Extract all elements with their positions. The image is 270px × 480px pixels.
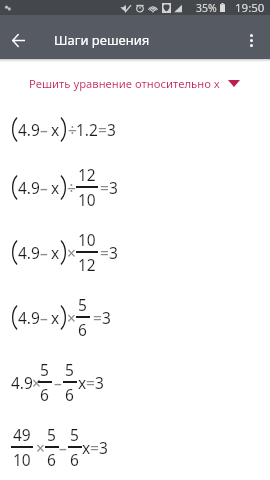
button[interactable]: 4.9 (0, 219, 270, 284)
staticText: 3 (107, 119, 116, 140)
staticText: – (40, 307, 48, 328)
staticText: = (100, 242, 109, 263)
staticText: 4.9 (18, 177, 40, 198)
staticText: – (40, 177, 48, 198)
staticText: 6 (40, 384, 49, 405)
staticText: x (51, 177, 60, 198)
staticText: × (32, 372, 41, 393)
button[interactable]: 4.9 (0, 349, 270, 414)
button[interactable]: 49 (0, 414, 270, 479)
staticText: Шаги решения (54, 31, 150, 49)
staticText: ÷ (67, 177, 76, 198)
staticText: = (100, 177, 109, 198)
staticText: x (82, 437, 91, 458)
staticText: – (40, 119, 48, 140)
staticText: 5 (70, 424, 79, 445)
button[interactable]: 4.9 (0, 105, 270, 154)
button[interactable]: Решить уравнение относительно x (0, 62, 270, 105)
button[interactable]: More options (232, 21, 270, 59)
staticText: 5 (40, 359, 49, 380)
staticText: 6 (65, 384, 74, 405)
staticText: x (51, 242, 60, 263)
staticText: 3 (99, 437, 108, 458)
staticText: 6 (47, 449, 56, 470)
button[interactable]: Back (0, 22, 36, 58)
staticText: 35% (196, 1, 217, 15)
staticText: 1.2 (76, 119, 98, 140)
staticText: × (67, 242, 76, 263)
staticText: – (59, 437, 67, 458)
staticText: Решить уравнение относительно x (29, 76, 220, 91)
staticText: = (90, 437, 99, 458)
staticText: 6 (70, 449, 79, 470)
staticText: x (51, 307, 60, 328)
staticText: 4.9 (18, 307, 40, 328)
staticText: 5 (47, 424, 56, 445)
staticText: × (67, 307, 76, 328)
staticText: 3 (109, 177, 118, 198)
staticText: x (78, 372, 87, 393)
staticText: × (36, 437, 45, 458)
staticText: 4.9 (11, 372, 33, 393)
staticText: 3 (102, 307, 111, 328)
staticText: 10 (78, 229, 96, 250)
staticText: 5 (65, 359, 74, 380)
staticText: 10 (13, 449, 31, 470)
staticText: – (40, 242, 48, 263)
button[interactable]: 4.9 (0, 154, 270, 219)
staticText: 3 (95, 372, 104, 393)
staticText: 12 (78, 164, 96, 185)
staticText: 5 (78, 294, 87, 315)
staticText: 4.9 (18, 242, 40, 263)
staticText: = (98, 119, 107, 140)
staticText: = (93, 307, 102, 328)
staticText: 4.9 (18, 119, 40, 140)
staticText: – (54, 372, 62, 393)
staticText: 19:50 (235, 0, 265, 15)
staticText: 3 (109, 242, 118, 263)
staticText: 49 (13, 424, 31, 445)
staticText: x (51, 119, 60, 140)
staticText: ÷ (68, 119, 77, 140)
staticText: 12 (78, 254, 96, 275)
staticText: 10 (78, 189, 96, 210)
staticText: = (86, 372, 95, 393)
button[interactable]: 4.9 (0, 284, 270, 349)
staticText: 6 (78, 319, 87, 340)
